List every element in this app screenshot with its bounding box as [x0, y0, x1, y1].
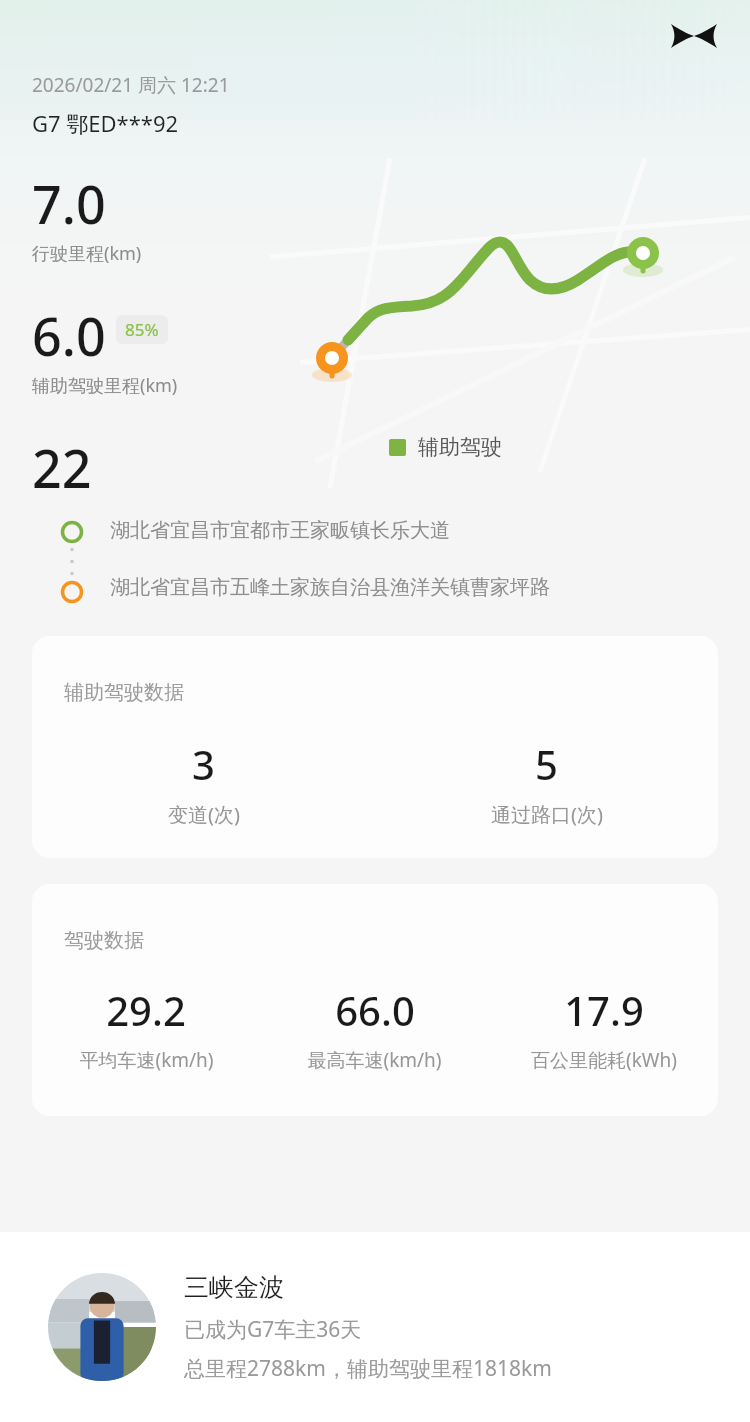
- staticText: G7 鄂ED***92: [32, 108, 179, 138]
- staticText: 29.2: [106, 983, 186, 1037]
- staticText: 辅助驾驶里程(km): [32, 373, 178, 398]
- staticText: 通过路口(次): [491, 801, 603, 828]
- button[interactable]: XPeng logo: [668, 16, 720, 56]
- staticText: 驾驶数据: [64, 928, 144, 953]
- staticText: 22: [32, 432, 92, 488]
- button[interactable]: 3: [32, 737, 375, 828]
- staticText: 7.0: [32, 168, 106, 239]
- staticText: 已成为G7车主36天: [184, 1315, 362, 1344]
- staticText: 17.9: [564, 983, 644, 1037]
- staticText: 平均车速(km/h): [79, 1047, 214, 1073]
- staticText: 变道(次): [168, 801, 240, 828]
- staticText: 2026/02/21 周六 12:21: [32, 72, 230, 98]
- staticText: 行驶里程(km): [32, 241, 142, 266]
- staticText: 3: [192, 737, 215, 791]
- staticText: 5: [535, 737, 558, 791]
- button[interactable]: 17.9: [489, 983, 718, 1073]
- button[interactable]: 5: [375, 737, 718, 828]
- staticText: 湖北省宜昌市五峰土家族自治县渔洋关镇曹家坪路: [110, 575, 550, 600]
- staticText: 百公里能耗(kWh): [531, 1047, 677, 1073]
- button[interactable]: 驾驶数据: [32, 884, 718, 1116]
- staticText: 6.0: [32, 300, 106, 371]
- staticText: 湖北省宜昌市宜都市王家畈镇长乐大道: [110, 518, 450, 543]
- staticText: 总里程2788km，辅助驾驶里程1818km: [184, 1354, 552, 1383]
- button[interactable]: 66.0: [260, 983, 489, 1073]
- button[interactable]: 辅助驾驶数据: [32, 636, 718, 858]
- button[interactable]: 三峡金波: [48, 1232, 750, 1422]
- staticText: 最高车速(km/h): [307, 1047, 442, 1073]
- staticText: 辅助驾驶: [418, 434, 502, 460]
- staticText: 三峡金波: [184, 1272, 284, 1303]
- staticText: 辅助驾驶数据: [64, 680, 184, 705]
- staticText: 66.0: [335, 983, 415, 1037]
- staticText: 85%: [125, 318, 159, 341]
- button[interactable]: 29.2: [32, 983, 260, 1073]
